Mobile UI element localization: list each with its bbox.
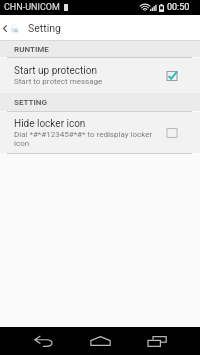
staticText: 00:50 — [167, 2, 190, 13]
button[interactable]: Recent apps — [144, 327, 170, 355]
staticText: Hide locker icon — [14, 118, 86, 130]
staticText: SETTING — [14, 98, 47, 107]
staticText: Start up protection — [14, 65, 97, 77]
staticText: Setting — [28, 22, 61, 34]
button[interactable]: Home — [87, 327, 113, 355]
button[interactable]: Enabled — [164, 68, 180, 84]
staticText: CHN-UNICOM — [4, 2, 60, 13]
staticText: Start to protect message — [14, 77, 103, 86]
button[interactable]: Disabled — [164, 125, 180, 141]
staticText: RUNTIME — [14, 45, 49, 54]
button[interactable]: Back — [31, 327, 57, 355]
button[interactable]: Start up protection — [0, 58, 200, 93]
button[interactable]: Navigate up — [0, 15, 9, 41]
staticText: Dial *#*#12345#*#* to redisplay locker i… — [14, 130, 156, 148]
button[interactable]: Hide locker icon — [0, 112, 200, 153]
